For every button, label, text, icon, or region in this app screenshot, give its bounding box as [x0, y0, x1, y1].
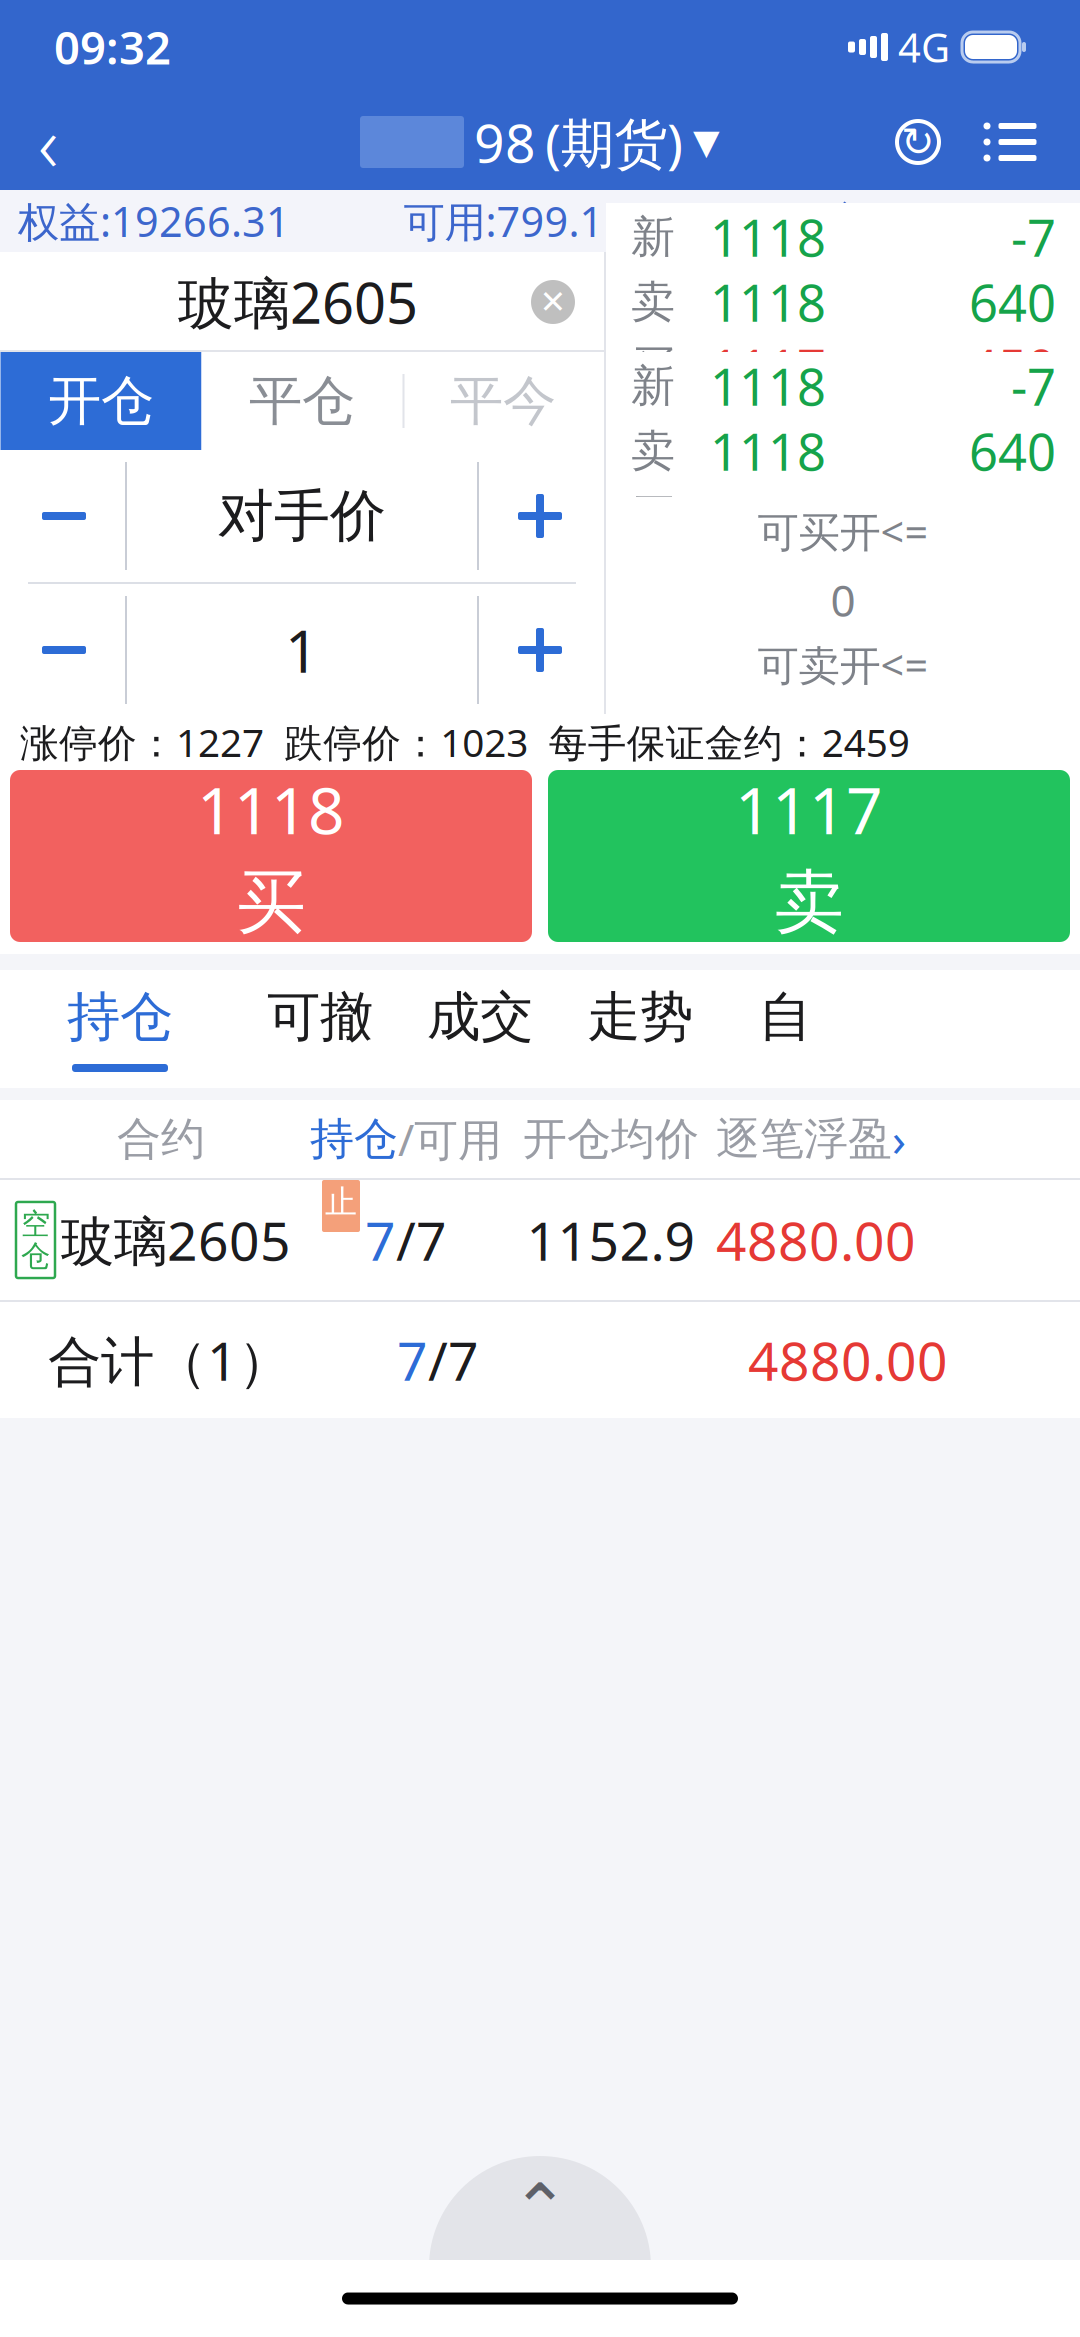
staticText: ⌃ — [511, 2170, 569, 2249]
button[interactable]: 可撤 — [267, 970, 373, 1088]
staticText: 玻璃2605 — [178, 265, 418, 339]
staticText: /可用 — [398, 1110, 502, 1168]
staticText: ↻ — [901, 119, 935, 165]
staticText: ✕ — [539, 284, 566, 320]
staticText: 买 — [236, 860, 305, 945]
staticText: /7 — [428, 1325, 479, 1395]
button[interactable]: 减 — [3, 450, 125, 582]
staticText: 卖 — [774, 860, 843, 945]
staticText: 仓 — [21, 1238, 50, 1274]
button[interactable]: 买入 1118 — [10, 770, 532, 942]
staticText: 1118 — [710, 268, 826, 336]
staticText: 7 — [365, 1205, 396, 1275]
staticText: 1118 — [197, 767, 345, 852]
staticText: 卖 — [631, 424, 675, 478]
staticText: 开仓 — [48, 368, 154, 434]
staticText: 1117 — [735, 767, 883, 852]
button[interactable]: 持仓 — [67, 970, 173, 1088]
staticText: 可卖开<= — [757, 637, 928, 692]
staticText: 1117 — [710, 482, 826, 550]
staticText: 成交 — [427, 984, 533, 1050]
staticText: 1 — [285, 611, 319, 689]
button[interactable]: 减 — [3, 584, 125, 716]
staticText: 1118 — [710, 352, 826, 420]
button[interactable]: 刷新 — [872, 96, 964, 188]
staticText: 可用:799.11 — [403, 194, 627, 248]
button[interactable]: 加 — [479, 584, 601, 716]
button[interactable]: 菜单 — [964, 96, 1056, 188]
button[interactable]: 成交 — [427, 970, 533, 1088]
staticText: 可买开<= — [757, 504, 928, 559]
staticText: 卖 — [631, 275, 675, 329]
staticText: 持仓 — [67, 984, 173, 1050]
staticText: 走势 — [587, 984, 693, 1050]
staticText: 合约 — [117, 1112, 205, 1166]
button[interactable]: 清除合约 — [510, 259, 596, 345]
staticText: 新 — [631, 359, 675, 413]
staticText: 自 — [758, 984, 811, 1050]
staticText: 止 — [325, 1182, 357, 1222]
staticText: 可撤 — [267, 984, 373, 1050]
staticText: 09:32 — [54, 17, 171, 77]
staticText: -7 — [1011, 352, 1056, 420]
staticText: 4880.00 — [716, 1205, 916, 1275]
button[interactable]: 走势 — [587, 970, 693, 1088]
staticText: -7 — [1011, 203, 1056, 271]
staticText: 640 — [969, 268, 1056, 336]
button[interactable]: 平仓 — [201, 352, 402, 450]
staticText: 风险度:89.94% — [741, 194, 1016, 248]
button[interactable]: 空 — [0, 1180, 1080, 1300]
staticText: 450 — [969, 333, 1056, 401]
staticText: 逐笔浮盈 — [716, 1112, 892, 1166]
button[interactable]: 返回 — [0, 94, 96, 190]
staticText: ‹ — [38, 91, 58, 193]
staticText: 98 (期货) — [474, 107, 683, 177]
staticText: 涨停价：1227 — [20, 716, 264, 768]
button[interactable]: 加 — [479, 450, 601, 582]
staticText: 0 — [830, 704, 855, 762]
staticText: 平仓 — [249, 368, 355, 434]
staticText: 持仓 — [310, 1112, 398, 1166]
staticText: › — [892, 1109, 906, 1169]
button[interactable]: 显示隐藏资金 — [1016, 190, 1072, 252]
staticText: 1152.9 — [526, 1205, 695, 1275]
button[interactable]: 98 (期货) — [352, 94, 728, 190]
staticText: 7 — [397, 1325, 428, 1395]
staticText: 1118 — [710, 417, 826, 485]
staticText: 买 — [631, 340, 675, 394]
staticText: ▼ — [693, 122, 720, 162]
button[interactable]: 平今 — [402, 352, 603, 450]
staticText: 开仓均价 — [523, 1112, 699, 1166]
staticText: 1118 — [710, 203, 826, 271]
button[interactable]: 展开面板 — [429, 2148, 651, 2260]
staticText: 4G — [898, 20, 950, 73]
staticText: 跌停价：1023 — [284, 716, 528, 768]
staticText: 权益:19266.31 — [18, 194, 290, 248]
staticText: 新 — [631, 210, 675, 264]
button[interactable]: 自 — [737, 970, 833, 1088]
staticText: 1117 — [710, 333, 826, 401]
staticText: 玻璃2605 — [61, 1205, 291, 1275]
staticText: 空 — [21, 1206, 50, 1242]
staticText: 买 — [631, 489, 675, 543]
staticText: 640 — [969, 417, 1056, 485]
button[interactable]: 卖出 1117 — [548, 770, 1070, 942]
staticText: 每手保证金约：2459 — [549, 716, 910, 768]
button[interactable]: 开仓 — [0, 352, 201, 450]
staticText: 合计（1） — [48, 1325, 291, 1395]
staticText: 0 — [830, 571, 855, 629]
staticText: 平今 — [450, 368, 556, 434]
staticText: 4880.00 — [748, 1325, 948, 1395]
staticText: /7 — [396, 1205, 447, 1275]
staticText: 对手价 — [218, 482, 386, 550]
